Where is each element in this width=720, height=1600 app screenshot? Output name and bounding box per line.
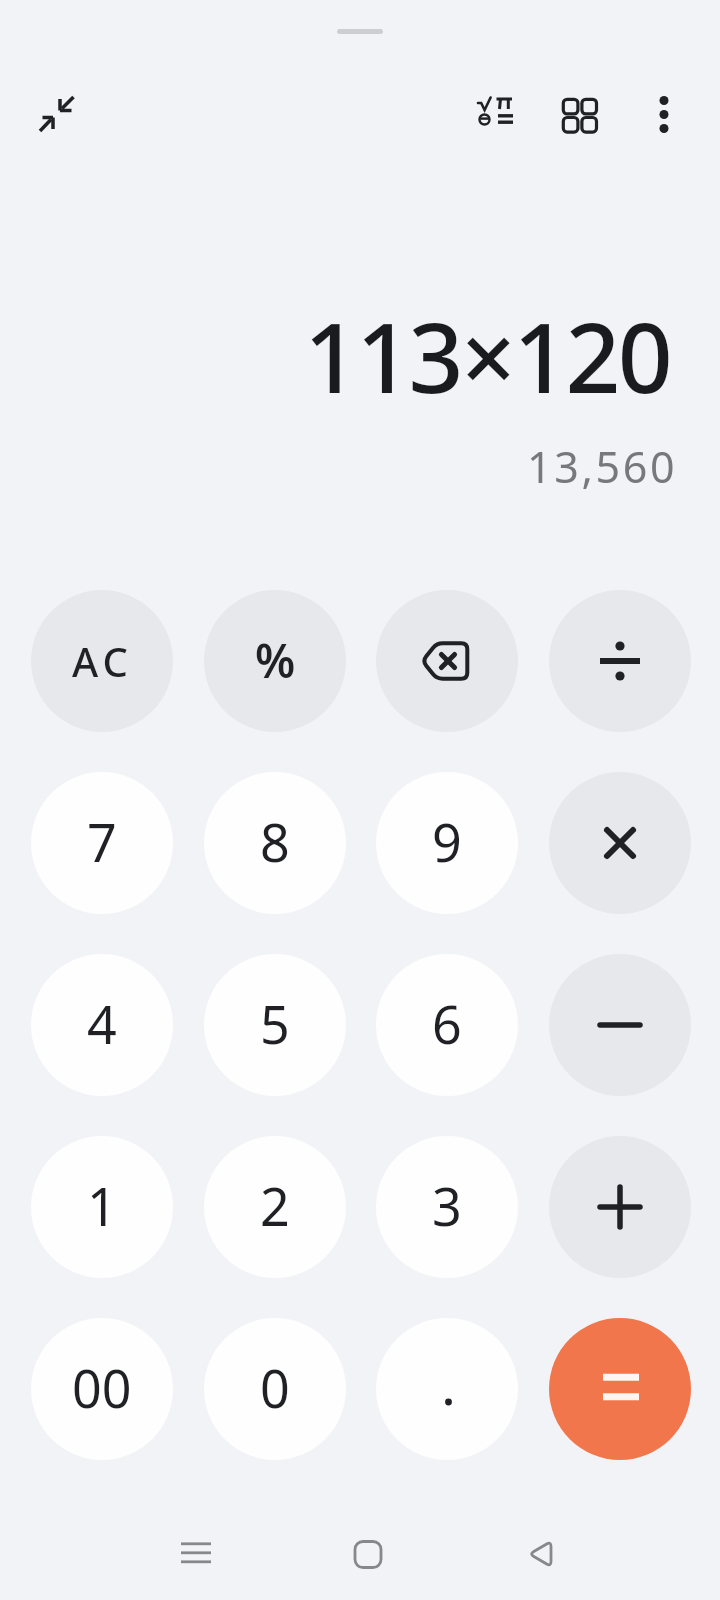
button[interactable] bbox=[549, 1318, 691, 1460]
button[interactable] bbox=[376, 1318, 518, 1460]
button[interactable] bbox=[549, 1136, 691, 1278]
staticText: 113×120 bbox=[304, 290, 671, 421]
button[interactable]: 1 bbox=[31, 1136, 173, 1278]
button[interactable] bbox=[558, 94, 602, 138]
button[interactable] bbox=[338, 1523, 398, 1583]
button[interactable] bbox=[166, 1523, 226, 1583]
button[interactable] bbox=[510, 1523, 570, 1583]
button[interactable]: 7 bbox=[31, 772, 173, 914]
button[interactable] bbox=[376, 590, 518, 732]
button[interactable]: 4 bbox=[31, 954, 173, 1096]
button[interactable]: % bbox=[204, 590, 346, 732]
button[interactable]: 8 bbox=[204, 772, 346, 914]
staticText: % bbox=[255, 629, 296, 692]
staticText: AC bbox=[72, 634, 133, 688]
button[interactable]: AC bbox=[31, 590, 173, 732]
button[interactable] bbox=[549, 590, 691, 732]
staticText: 5 bbox=[260, 988, 290, 1059]
button[interactable] bbox=[549, 772, 691, 914]
staticText: 3 bbox=[432, 1170, 462, 1241]
staticText: 9 bbox=[432, 806, 462, 877]
staticText: 6 bbox=[432, 988, 462, 1059]
button[interactable]: 6 bbox=[376, 954, 518, 1096]
staticText: 7 bbox=[87, 806, 117, 877]
staticText: 8 bbox=[260, 806, 290, 877]
staticText: 13,560 bbox=[527, 437, 678, 496]
button[interactable]: 3 bbox=[376, 1136, 518, 1278]
button[interactable] bbox=[644, 92, 684, 138]
button[interactable] bbox=[472, 92, 518, 134]
button[interactable] bbox=[549, 954, 691, 1096]
staticText: 00 bbox=[72, 1352, 132, 1423]
button[interactable]: 0 bbox=[204, 1318, 346, 1460]
button[interactable]: 00 bbox=[31, 1318, 173, 1460]
staticText: 1 bbox=[87, 1170, 117, 1241]
button[interactable]: 2 bbox=[204, 1136, 346, 1278]
staticText: 4 bbox=[87, 988, 117, 1059]
staticText: 0 bbox=[260, 1352, 290, 1423]
staticText: 2 bbox=[260, 1170, 290, 1241]
button[interactable]: 9 bbox=[376, 772, 518, 914]
button[interactable] bbox=[36, 94, 78, 136]
button[interactable]: 5 bbox=[204, 954, 346, 1096]
